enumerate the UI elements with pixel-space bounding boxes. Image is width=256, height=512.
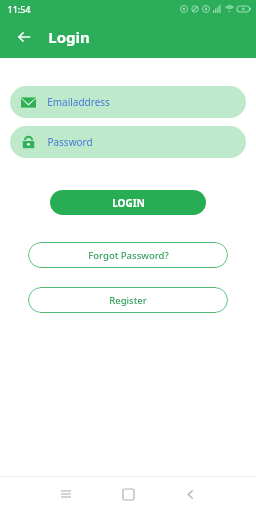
button[interactable]: Back — [159, 477, 221, 511]
button[interactable]: Register — [28, 287, 228, 313]
button[interactable]: Home — [97, 477, 159, 511]
staticText: Register — [109, 294, 147, 307]
staticText: Emailaddress — [47, 95, 110, 109]
staticText: Forgot Password? — [88, 249, 169, 262]
staticText: LOGIN — [112, 196, 145, 210]
button[interactable]: Emailaddress — [10, 86, 246, 118]
staticText: Password — [47, 135, 93, 149]
button[interactable]: Recents — [35, 477, 97, 511]
button[interactable]: LOGIN — [50, 190, 206, 215]
button[interactable]: Password — [10, 126, 246, 158]
staticText: 11:54 — [7, 3, 31, 15]
button[interactable]: Forgot Password? — [28, 242, 228, 268]
button[interactable]: Back — [10, 23, 38, 51]
staticText: Login — [48, 27, 90, 47]
